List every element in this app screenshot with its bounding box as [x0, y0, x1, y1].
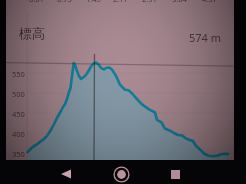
staticText: 2.91	[142, 0, 157, 4]
staticText: 0.73	[57, 0, 72, 4]
staticText: 1.45	[86, 0, 101, 4]
staticText: 0.01	[29, 0, 44, 4]
staticText: 標高	[19, 25, 45, 41]
staticText: 500	[12, 89, 25, 99]
staticText: 2.17	[113, 0, 128, 4]
staticText: 3.64	[172, 0, 187, 4]
staticText: 350	[12, 149, 25, 159]
staticText: 400	[12, 129, 25, 139]
staticText: 4.37	[202, 0, 217, 4]
button[interactable]: Recents	[165, 164, 185, 184]
button[interactable]: Home	[110, 163, 132, 184]
button[interactable]: Back	[56, 164, 76, 184]
staticText: 574 m	[189, 30, 222, 45]
staticText: 550	[12, 69, 25, 79]
staticText: 450	[12, 109, 25, 119]
